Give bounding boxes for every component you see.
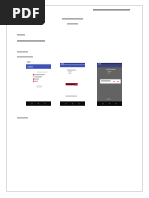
button[interactable]: PDF document [0, 0, 45, 25]
staticText: PDF [12, 3, 40, 22]
